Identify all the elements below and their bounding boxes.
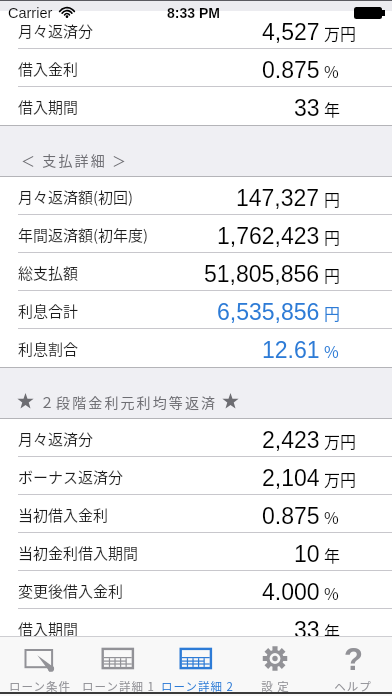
staticText: 円 (324, 187, 341, 210)
staticText: 6,535,856 (217, 299, 320, 325)
staticText: 10 (294, 541, 320, 567)
staticText: % (324, 581, 339, 604)
staticText: 147,327 (236, 185, 320, 211)
staticText: 51,805,856 (204, 261, 320, 287)
staticText: 月々返済分 (18, 20, 94, 42)
staticText: 0.875 (262, 503, 320, 529)
staticText: 借入金利 (18, 58, 79, 80)
staticText: 2,423 (262, 427, 320, 453)
staticText: ボーナス返済分 (18, 466, 124, 488)
button[interactable]: ボーナス返済分 (0, 457, 392, 495)
button[interactable]: 借入期間 (0, 87, 392, 125)
staticText: 総支払額 (18, 262, 79, 284)
staticText: 借入期間 (18, 618, 79, 640)
staticText: 2,104 (262, 465, 320, 491)
staticText: 4.000 (262, 579, 320, 605)
staticText: 設 定 (261, 678, 290, 695)
staticText: 年間返済額(初年度) (18, 224, 149, 246)
staticText: 8:33 PM (167, 5, 220, 21)
button[interactable]: 当初金利借入期間 (0, 533, 392, 571)
staticText: 1,762,423 (217, 223, 320, 249)
staticText: 利息合計 (18, 300, 79, 322)
button[interactable]: 借入金利 (0, 49, 392, 87)
button[interactable]: 月々返済分 (0, 11, 392, 49)
staticText: 4,527 (262, 19, 320, 45)
staticText: ヘルプ (334, 678, 372, 695)
staticText: ローン条件 (9, 678, 71, 695)
staticText: ２段階金利元利均等返済 (40, 392, 218, 412)
staticText: 年 (324, 543, 341, 566)
staticText: 万円 (324, 21, 357, 44)
staticText: % (324, 59, 339, 82)
staticText: % (324, 339, 339, 362)
button[interactable]: 利息割合 (0, 329, 392, 367)
button[interactable]: 変更後借入金利 (0, 571, 392, 609)
staticText: 33 (294, 617, 320, 643)
button[interactable]: 当初借入金利 (0, 495, 392, 533)
staticText: 円 (324, 225, 341, 248)
staticText: 0.875 (262, 57, 320, 83)
staticText: % (324, 505, 339, 528)
staticText: ＜ 支払詳細 ＞ (21, 150, 129, 170)
staticText: 12.61 (262, 337, 320, 363)
button[interactable]: ローン条件 (0, 636, 79, 696)
button[interactable]: 月々返済分 (0, 419, 392, 457)
button[interactable]: 年間返済額(初年度) (0, 215, 392, 253)
staticText: 借入期間 (18, 96, 79, 118)
staticText: ? (344, 642, 363, 677)
staticText: 月々返済額(初回) (18, 186, 134, 208)
staticText: ローン詳細 1 (82, 678, 155, 695)
staticText: ローン詳細 2 (161, 678, 234, 695)
staticText: 年 (324, 97, 341, 120)
button[interactable]: 借入期間 (0, 609, 392, 647)
button[interactable]: 設 定 (236, 636, 314, 696)
staticText: 円 (324, 301, 341, 324)
staticText: 33 (294, 95, 320, 121)
staticText: 利息割合 (18, 338, 79, 360)
staticText: 年 (324, 619, 341, 642)
button[interactable]: ローン詳細 2 (158, 636, 236, 696)
staticText: 当初金利借入期間 (18, 542, 139, 564)
staticText: 円 (324, 263, 341, 286)
staticText: Carrier (8, 5, 53, 21)
staticText: 当初借入金利 (18, 504, 109, 526)
button[interactable]: 月々返済額(初回) (0, 177, 392, 215)
button[interactable]: ? (314, 636, 392, 696)
button[interactable]: 総支払額 (0, 253, 392, 291)
staticText: 万円 (324, 429, 357, 452)
button[interactable]: ローン詳細 1 (79, 636, 158, 696)
staticText: 変更後借入金利 (18, 580, 124, 602)
staticText: 月々返済分 (18, 428, 94, 450)
staticText: 万円 (324, 467, 357, 490)
button[interactable]: 利息合計 (0, 291, 392, 329)
